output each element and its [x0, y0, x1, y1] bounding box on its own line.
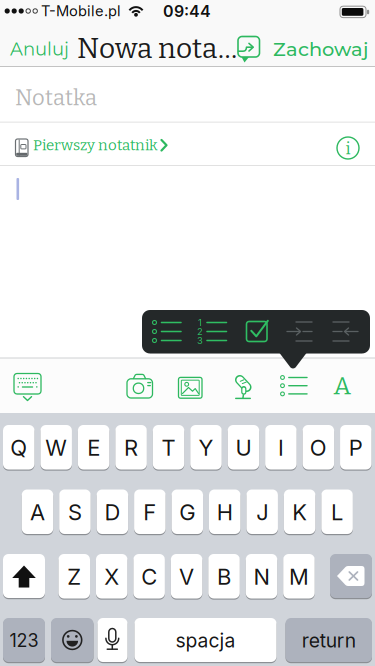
staticText: H	[217, 499, 233, 525]
button[interactable]: Format tekstu	[320, 364, 364, 408]
staticText: A	[333, 371, 350, 401]
button[interactable]: Z	[58, 554, 90, 600]
staticText: 3	[197, 335, 203, 346]
staticText: Zachowaj	[273, 37, 368, 61]
button[interactable]: O	[303, 425, 334, 471]
staticText: 1	[198, 317, 202, 328]
button[interactable]: Zachowaj	[238, 32, 368, 66]
staticText: L	[331, 499, 343, 525]
button[interactable]: H	[209, 489, 240, 535]
button[interactable]: Formatowanie listy	[271, 364, 315, 408]
button[interactable]: F	[134, 489, 166, 535]
button[interactable]: L	[321, 489, 353, 535]
button[interactable]: Shift	[3, 554, 45, 599]
button[interactable]: Usuń	[330, 554, 372, 599]
staticText: Y	[198, 434, 213, 461]
staticText: M	[289, 563, 309, 590]
button[interactable]: D	[97, 489, 128, 535]
button[interactable]: Dodaj zdjęcie	[168, 364, 212, 408]
staticText: X	[104, 563, 119, 590]
staticText: U	[235, 434, 251, 461]
button[interactable]: Emoji	[51, 618, 93, 663]
staticText: G	[179, 499, 195, 525]
staticText: Z	[67, 563, 81, 590]
button[interactable]: A	[22, 489, 53, 535]
staticText: T-Mobile.pl	[41, 2, 121, 20]
staticText: 09:44	[163, 2, 211, 21]
button[interactable]: P	[340, 425, 372, 471]
staticText: D	[104, 499, 120, 525]
staticText: B	[217, 563, 231, 590]
button[interactable]: Lista punktowana	[142, 310, 187, 353]
button[interactable]: Zwiększ wcięcie	[277, 310, 322, 353]
staticText: Anuluj	[10, 38, 69, 60]
button[interactable]: Dyktowanie	[97, 618, 127, 663]
staticText: Notatka	[15, 85, 97, 111]
staticText: P	[349, 434, 363, 461]
staticText: i	[345, 138, 350, 159]
button[interactable]: S	[59, 489, 91, 535]
button[interactable]: J	[246, 489, 278, 535]
staticText: Nowa nota…	[77, 32, 237, 65]
button[interactable]: R	[115, 425, 147, 471]
button[interactable]: Zrób zdjęcie	[118, 364, 162, 408]
button[interactable]: G	[172, 489, 203, 535]
button[interactable]: Anuluj	[10, 32, 80, 66]
button[interactable]: Lista numerowana	[187, 310, 232, 353]
button[interactable]: E	[78, 425, 109, 471]
button[interactable]: I	[265, 425, 297, 471]
staticText: N	[253, 563, 269, 590]
staticText: R	[124, 434, 138, 461]
button[interactable]: K	[284, 489, 315, 535]
staticText: return	[302, 629, 356, 652]
staticText: C	[141, 563, 157, 590]
button[interactable]: Zmniejsz wcięcie	[322, 310, 367, 353]
staticText: J	[256, 499, 268, 525]
staticText: E	[87, 434, 100, 461]
staticText: O	[310, 434, 327, 461]
button[interactable]: return	[285, 618, 372, 663]
button[interactable]: N	[246, 554, 277, 600]
staticText: F	[143, 499, 156, 525]
staticText: A	[30, 499, 45, 525]
staticText: 2	[197, 326, 203, 337]
button[interactable]: Pole wyboru	[234, 310, 279, 353]
staticText: Q	[10, 434, 27, 461]
button[interactable]: T	[153, 425, 184, 471]
button[interactable]: C	[133, 554, 165, 600]
staticText: K	[292, 499, 307, 525]
staticText: 123	[9, 630, 38, 651]
button[interactable]: Nagraj dźwięk	[221, 364, 265, 408]
button[interactable]: V	[171, 554, 202, 600]
button[interactable]: B	[208, 554, 240, 600]
staticText: I	[278, 434, 284, 461]
staticText: T	[162, 434, 176, 461]
button[interactable]: Udostępnij	[232, 32, 266, 66]
button[interactable]: M	[283, 554, 315, 600]
button[interactable]: Schowaj klawiaturę	[5, 364, 49, 408]
button[interactable]: U	[228, 425, 259, 471]
staticText: V	[179, 563, 194, 590]
staticText: S	[68, 499, 82, 525]
button[interactable]: Pierwszy notatnik	[0, 123, 375, 165]
button[interactable]: Informacje o notatniku	[333, 133, 363, 163]
staticText: Pierwszy notatnik	[33, 136, 158, 154]
button[interactable]: X	[96, 554, 127, 600]
button[interactable]: Q	[3, 425, 34, 471]
button[interactable]: Y	[190, 425, 222, 471]
button[interactable]: spacja	[134, 618, 276, 663]
button[interactable]: 123	[3, 618, 45, 663]
staticText: W	[45, 434, 67, 461]
staticText: spacja	[175, 629, 235, 652]
button[interactable]: W	[40, 425, 72, 471]
